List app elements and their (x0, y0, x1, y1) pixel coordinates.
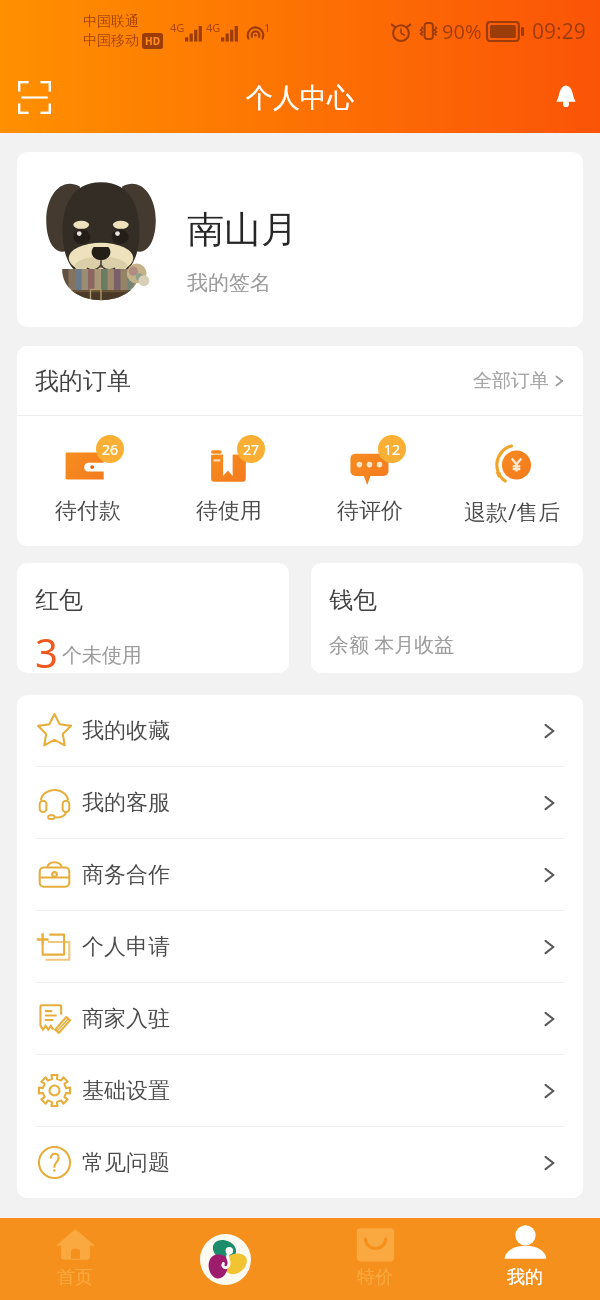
button[interactable]: 商家入驻 (17, 983, 583, 1054)
button[interactable]: 钱包 (311, 563, 583, 673)
staticText: 中国移动 (83, 32, 139, 50)
staticText: 商务合作 (82, 861, 170, 889)
staticText: 商家入驻 (82, 1005, 170, 1033)
staticText: 余额 本月收益 (329, 631, 455, 658)
button[interactable]: 商务合作 (17, 839, 583, 910)
button[interactable]: 退款/售后 (441, 416, 583, 546)
button[interactable]: Notifications (542, 74, 590, 122)
staticText: 4G (170, 20, 185, 35)
staticText: 我的订单 (35, 366, 131, 396)
staticText: 基础设置 (82, 1077, 170, 1105)
staticText: 27 (243, 440, 260, 459)
staticText: 个未使用 (62, 643, 142, 668)
staticText: 我的客服 (82, 789, 170, 817)
staticText: 26 (102, 440, 119, 459)
staticText: 常见问题 (82, 1149, 170, 1177)
button[interactable]: 南山月 (17, 152, 583, 327)
button[interactable]: 26 (17, 416, 158, 546)
staticText: 3 (35, 625, 58, 673)
button[interactable]: 我的客服 (17, 767, 583, 838)
staticText: 1 (264, 20, 271, 35)
staticText: 4G (206, 20, 221, 35)
staticText: 退款/售后 (464, 496, 561, 526)
staticText: 特价 (357, 1266, 393, 1289)
button[interactable]: 特价 (300, 1218, 450, 1300)
staticText: 中国联通 (83, 13, 139, 31)
staticText: 南山月 (187, 206, 298, 253)
button[interactable]: 我的 (450, 1218, 600, 1300)
staticText: 我的 (507, 1266, 543, 1289)
staticText: 我的收藏 (82, 717, 170, 745)
staticText: 首页 (57, 1266, 93, 1289)
staticText: 个人中心 (246, 81, 354, 115)
staticText: 我的签名 (187, 270, 271, 296)
staticText: HD (145, 34, 160, 48)
button[interactable]: 12 (299, 416, 441, 546)
staticText: 全部订单 (473, 369, 549, 393)
staticText: 待付款 (55, 497, 121, 525)
staticText: 待评价 (337, 497, 403, 525)
button[interactable]: 基础设置 (17, 1055, 583, 1126)
button[interactable]: 常见问题 (17, 1127, 583, 1198)
staticText: 个人申请 (82, 933, 170, 961)
button[interactable]: Discover (150, 1218, 300, 1300)
staticText: 钱包 (329, 585, 377, 615)
button[interactable]: Scan QR code (8, 72, 60, 124)
button[interactable]: 我的收藏 (17, 695, 583, 766)
staticText: 90% (442, 18, 482, 45)
button[interactable]: 我的订单 (17, 346, 583, 415)
staticText: 待使用 (196, 497, 262, 525)
button[interactable]: 首页 (0, 1218, 150, 1300)
staticText: 12 (384, 440, 401, 459)
staticText: 09:29 (532, 17, 586, 46)
button[interactable]: 27 (158, 416, 299, 546)
button[interactable]: 红包 (17, 563, 289, 673)
staticText: 红包 (35, 585, 83, 615)
button[interactable]: 个人申请 (17, 911, 583, 982)
